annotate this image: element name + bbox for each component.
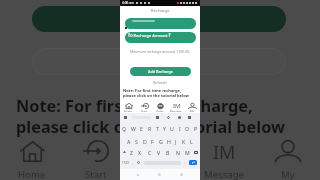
button[interactable]: Mobile number [125, 18, 196, 29]
staticText: Y [163, 125, 166, 132]
button[interactable]: Message [192, 136, 256, 180]
staticText: Start [85, 168, 107, 180]
staticText: R [148, 125, 152, 132]
staticText: Recharge [151, 8, 170, 14]
staticText: M [185, 149, 190, 156]
staticText: Add Recharge [148, 69, 173, 74]
button[interactable]: Order [128, 136, 192, 180]
staticText: G [159, 138, 163, 145]
staticText: Order [156, 110, 164, 112]
button[interactable]: Start [136, 101, 152, 112]
staticText: Message [204, 168, 244, 180]
staticText: IM [173, 102, 181, 109]
staticText: I [179, 125, 181, 132]
staticText: N [176, 149, 180, 156]
staticText: Z [130, 149, 133, 156]
staticText: L [190, 138, 193, 145]
staticText: . [184, 160, 186, 165]
staticText: Note: For first time recharge, please cl… [123, 88, 190, 98]
button[interactable]: My [184, 101, 200, 112]
button[interactable]: Refresh [153, 80, 167, 85]
staticText: Message [170, 110, 182, 112]
staticText: ?123 [122, 161, 129, 165]
staticText: 4:06 am [122, 1, 134, 5]
staticText: W [131, 125, 136, 132]
staticText: ↵ [192, 161, 195, 165]
staticText: U [170, 125, 174, 132]
staticText: V [157, 149, 161, 156]
staticText: E [140, 125, 143, 132]
button[interactable]: Home [0, 136, 64, 180]
staticText: My [281, 168, 295, 180]
staticText: My [190, 110, 194, 112]
staticText: T [156, 125, 159, 132]
staticText: B [166, 149, 170, 156]
button[interactable]: My [256, 136, 320, 180]
staticText: Q [122, 125, 127, 132]
button[interactable]: Home [120, 101, 136, 112]
staticText: Start [141, 110, 148, 112]
staticText: Note: For first time recharge, please cl… [16, 95, 285, 137]
staticText: Minimum recharge amount ₹100.00 [130, 49, 190, 54]
staticText: P [194, 125, 198, 132]
staticText: J [175, 138, 177, 145]
staticText: Home [18, 168, 46, 180]
button[interactable]: Recharge amount [125, 32, 196, 43]
staticText: F [151, 138, 154, 145]
button[interactable]: Order [152, 101, 168, 112]
staticText: Order [147, 168, 174, 180]
button[interactable]: Start [64, 136, 128, 180]
staticText: K [182, 138, 186, 145]
button[interactable]: Message [168, 101, 184, 112]
button[interactable]: Mobile number field [32, 6, 286, 32]
staticText: C [148, 149, 152, 156]
staticText: X [138, 149, 142, 156]
staticText: S [135, 138, 138, 145]
button[interactable]: Recharge amount field [32, 48, 286, 75]
staticText: H [167, 138, 171, 145]
staticText: O [185, 125, 190, 132]
staticText: ₹0 Recharge Amount ₹ [128, 33, 171, 38]
staticText: IM [213, 140, 236, 162]
button[interactable]: Add Recharge [130, 67, 191, 76]
staticText: A [127, 138, 131, 145]
staticText: Home [124, 110, 132, 112]
staticText: D [143, 138, 147, 145]
staticText: , [132, 160, 134, 165]
